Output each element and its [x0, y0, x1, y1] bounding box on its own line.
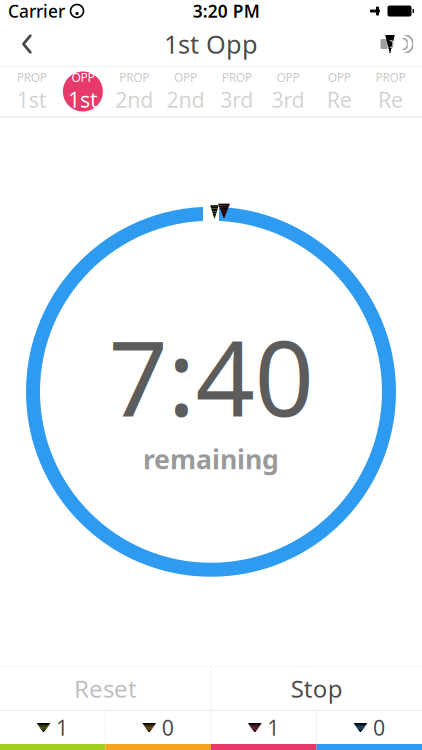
staticText: 1st Opp	[164, 27, 258, 61]
button[interactable]: OPP	[160, 66, 211, 116]
staticText: 1	[56, 713, 68, 742]
staticText: Reset	[74, 673, 137, 704]
staticText: PROP	[222, 69, 252, 85]
staticText: 3:20 PM	[193, 0, 260, 22]
button[interactable]: Reset	[0, 666, 211, 710]
staticText: 3rd	[271, 85, 304, 114]
staticText: OPP	[71, 69, 94, 85]
button[interactable]: OPP	[262, 66, 313, 116]
button[interactable]: Sound	[368, 22, 422, 66]
staticText: 1st	[17, 85, 47, 114]
staticText: Re	[327, 85, 352, 114]
button[interactable]: Stop	[211, 666, 422, 710]
button[interactable]: PROP	[6, 66, 57, 116]
button[interactable]: PROP	[365, 66, 416, 116]
staticText: PROP	[375, 69, 405, 85]
button[interactable]: PROP	[211, 66, 262, 116]
button[interactable]: PROP	[108, 66, 160, 116]
staticText: 0	[162, 713, 174, 742]
staticText: OPP	[276, 69, 299, 85]
button[interactable]: 1	[211, 711, 316, 744]
button[interactable]: 0	[317, 711, 422, 744]
staticText: Carrier	[8, 0, 65, 22]
staticText: Re	[378, 85, 403, 114]
staticText: 0	[373, 713, 385, 742]
button[interactable]: 0	[106, 711, 211, 744]
staticText: 7:40	[108, 307, 313, 445]
staticText: PROP	[17, 69, 47, 85]
button[interactable]: OPP	[313, 66, 365, 116]
staticText: 3rd	[220, 85, 253, 114]
staticText: OPP	[174, 69, 197, 85]
staticText: Stop	[291, 673, 343, 704]
button[interactable]: 1	[0, 711, 105, 744]
staticText: 2nd	[115, 85, 153, 114]
staticText: remaining	[143, 441, 279, 476]
staticText: PROP	[119, 69, 149, 85]
staticText: 1st	[68, 85, 98, 114]
button[interactable]: OPP	[57, 66, 108, 116]
staticText: 2nd	[166, 85, 204, 114]
staticText: OPP	[328, 69, 351, 85]
staticText: 1	[267, 713, 279, 742]
button[interactable]: Back	[0, 22, 54, 66]
